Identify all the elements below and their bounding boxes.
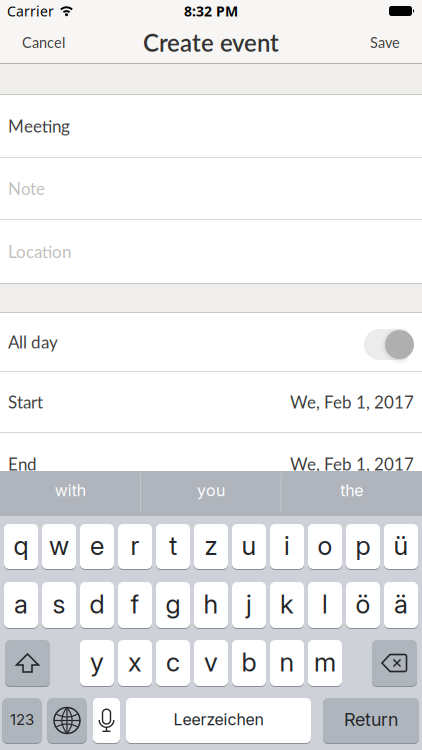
staticText: x <box>128 646 142 678</box>
staticText: Location <box>8 241 71 262</box>
button[interactable]: v <box>194 639 228 687</box>
staticText: We, Feb 1, 2017 <box>290 392 414 412</box>
staticText: Carrier <box>7 2 54 20</box>
button[interactable]: m <box>308 639 342 687</box>
button[interactable]: ä <box>384 581 418 629</box>
staticText: s <box>52 588 65 620</box>
staticText: j <box>246 588 252 620</box>
staticText: ö <box>355 588 370 620</box>
staticText: 8:32 PM <box>184 2 238 20</box>
button[interactable]: All day <box>364 326 414 357</box>
button[interactable]: x <box>118 639 152 687</box>
staticText: q <box>13 530 28 561</box>
button[interactable]: s <box>42 581 76 629</box>
button[interactable]: e <box>80 523 114 570</box>
staticText: All day <box>8 332 58 352</box>
staticText: ü <box>393 530 408 561</box>
button[interactable]: w <box>42 523 76 570</box>
button[interactable]: h <box>194 581 228 629</box>
button[interactable]: k <box>270 581 304 629</box>
staticText: f <box>130 588 139 620</box>
staticText: h <box>203 588 218 620</box>
button[interactable]: Cancel <box>0 34 65 51</box>
staticText: g <box>165 588 180 620</box>
button[interactable]: Dictate <box>93 697 120 744</box>
button[interactable]: g <box>156 581 190 629</box>
button[interactable]: Shift <box>5 639 50 687</box>
button[interactable]: Note <box>0 158 422 219</box>
staticText: Cancel <box>22 34 65 51</box>
staticText: v <box>204 646 218 678</box>
button[interactable]: t <box>156 523 190 570</box>
button[interactable]: ü <box>384 523 418 570</box>
staticText: w <box>49 530 69 561</box>
button[interactable]: Location <box>0 220 422 283</box>
button[interactable]: y <box>80 639 114 687</box>
button[interactable]: a <box>4 581 38 629</box>
button[interactable]: r <box>118 523 152 570</box>
staticText: End <box>8 454 37 474</box>
button[interactable]: p <box>346 523 380 570</box>
button[interactable]: Return <box>323 697 419 744</box>
button[interactable]: you <box>142 469 280 512</box>
button[interactable]: Save <box>370 34 422 51</box>
staticText: Save <box>370 34 400 51</box>
staticText: o <box>317 530 332 561</box>
staticText: u <box>241 530 256 561</box>
button[interactable]: Meeting <box>0 95 422 157</box>
staticText: Note <box>8 178 45 199</box>
staticText: k <box>280 588 294 620</box>
staticText: Start <box>8 392 43 412</box>
button[interactable]: u <box>232 523 266 570</box>
staticText: z <box>204 530 217 561</box>
staticText: with <box>55 481 86 500</box>
button[interactable]: Delete <box>372 639 417 687</box>
staticText: r <box>130 530 139 561</box>
staticText: l <box>322 588 328 620</box>
staticText: We, Feb 1, 2017 <box>290 454 414 474</box>
staticText: d <box>89 588 104 620</box>
button[interactable]: Start <box>0 372 422 432</box>
button[interactable]: 123 <box>2 697 41 744</box>
button[interactable]: c <box>156 639 190 687</box>
button[interactable]: with <box>1 469 139 512</box>
button[interactable]: n <box>270 639 304 687</box>
staticText: y <box>90 646 104 678</box>
staticText: you <box>197 481 225 500</box>
staticText: t <box>169 530 177 561</box>
button[interactable]: All day <box>0 313 422 371</box>
button[interactable]: q <box>4 523 38 570</box>
staticText: m <box>314 646 336 678</box>
button[interactable]: Leerzeichen <box>126 697 311 744</box>
staticText: Meeting <box>8 116 70 136</box>
staticText: Leerzeichen <box>173 710 263 729</box>
staticText: b <box>241 646 256 678</box>
staticText: the <box>340 481 363 500</box>
staticText: ä <box>394 588 408 620</box>
button[interactable]: f <box>118 581 152 629</box>
button[interactable]: i <box>270 523 304 570</box>
button[interactable]: o <box>308 523 342 570</box>
staticText: p <box>355 530 370 561</box>
button[interactable]: End <box>0 433 422 471</box>
staticText: a <box>14 588 28 620</box>
staticText: Return <box>344 709 398 730</box>
staticText: 123 <box>10 710 34 728</box>
staticText: Create event <box>143 28 279 57</box>
button[interactable]: j <box>232 581 266 629</box>
button[interactable]: b <box>232 639 266 687</box>
staticText: e <box>90 530 104 561</box>
staticText: c <box>166 646 180 678</box>
button[interactable]: l <box>308 581 342 629</box>
button[interactable]: ö <box>346 581 380 629</box>
staticText: i <box>284 530 290 561</box>
button[interactable]: Next keyboard <box>47 697 86 744</box>
staticText: n <box>279 646 294 678</box>
button[interactable]: z <box>194 523 228 570</box>
button[interactable]: the <box>283 469 421 512</box>
button[interactable]: d <box>80 581 114 629</box>
